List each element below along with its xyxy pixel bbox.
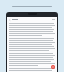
button[interactable]: Back <box>9 19 11 21</box>
button[interactable]: Compose <box>51 65 55 69</box>
button[interactable]: Back <box>9 18 55 21</box>
